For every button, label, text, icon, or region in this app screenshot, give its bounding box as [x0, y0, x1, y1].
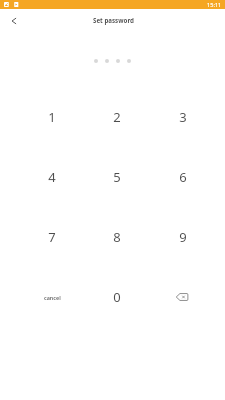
button[interactable]: 2 — [84, 87, 150, 147]
staticText: 6 — [179, 168, 187, 186]
button[interactable]: 3 — [150, 87, 216, 147]
button[interactable]: 7 — [19, 207, 84, 267]
button[interactable]: 4 — [19, 147, 84, 207]
button[interactable]: cancel — [19, 267, 84, 327]
button[interactable]: 5 — [84, 147, 150, 207]
staticText: 5 — [113, 168, 121, 186]
staticText: 4 — [48, 168, 56, 186]
staticText: 9 — [179, 228, 187, 246]
button[interactable]: 1 — [19, 87, 84, 147]
staticText: 7 — [48, 228, 56, 246]
staticText: 0 — [113, 288, 121, 306]
staticText: 15:11 — [207, 1, 222, 9]
button[interactable]: 0 — [84, 267, 150, 327]
button[interactable]: Delete — [150, 267, 216, 327]
staticText: 8 — [113, 228, 121, 246]
button[interactable]: Back — [1, 8, 27, 34]
staticText: Set password — [93, 16, 134, 24]
staticText: 3 — [179, 108, 187, 126]
staticText: cancel — [44, 294, 61, 301]
button[interactable]: 9 — [150, 207, 216, 267]
staticText: 2 — [113, 108, 121, 126]
button[interactable]: 6 — [150, 147, 216, 207]
button[interactable]: 8 — [84, 207, 150, 267]
staticText: 1 — [48, 108, 56, 126]
